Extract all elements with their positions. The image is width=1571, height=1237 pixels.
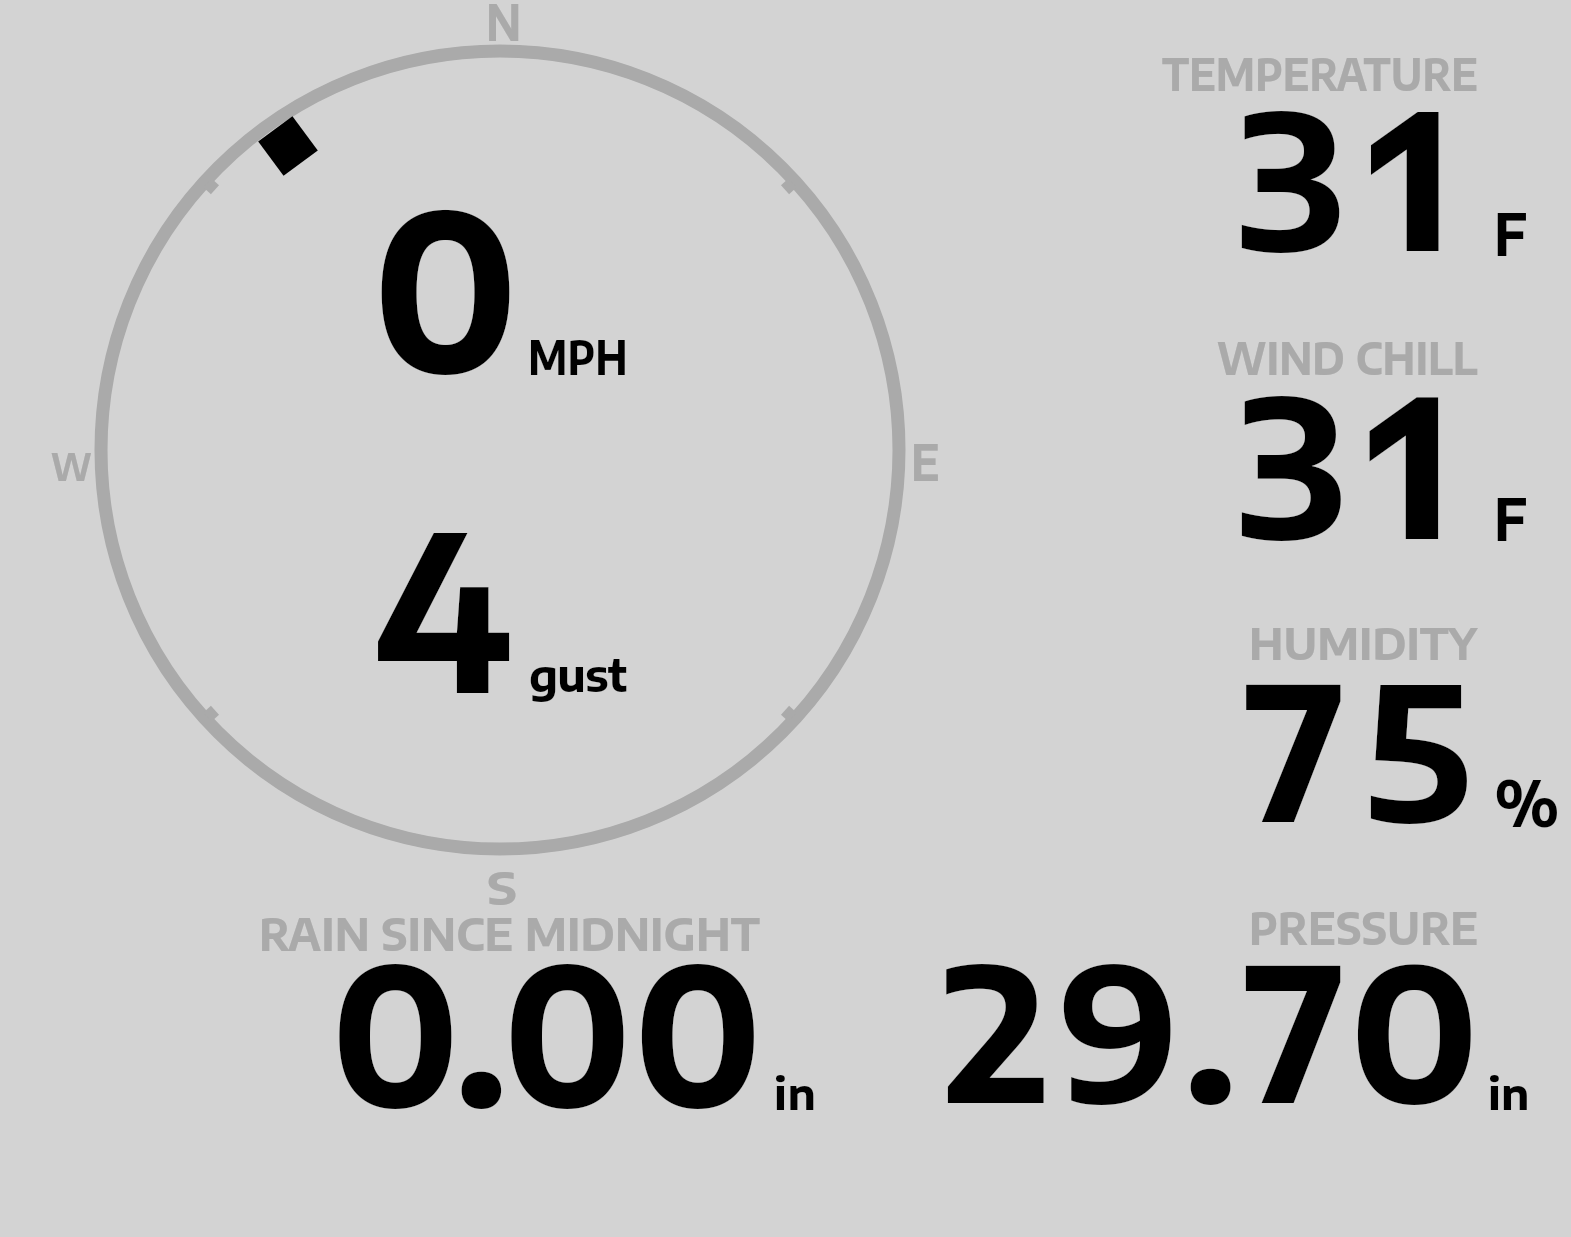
staticText: F [1494,197,1528,268]
staticText: PRESSURE [1249,899,1478,955]
button[interactable]: Wind direction compass, 0 miles per hour… [96,45,904,853]
staticText: % [1494,762,1560,841]
button[interactable]: Humidity 75 percent [1130,610,1570,840]
staticText: in [774,1065,817,1119]
staticText: E [911,429,940,492]
staticText: S [487,859,518,915]
staticText: 0 [371,149,520,421]
staticText: WIND CHILL [1217,329,1478,385]
staticText: 0.00 [330,912,764,1149]
staticText: gust [529,647,627,702]
button[interactable]: Pressure 29.70 inches [900,900,1550,1125]
staticText: F [1494,482,1528,553]
staticText: HUMIDITY [1249,615,1478,669]
staticText: TEMPERATURE [1162,45,1479,101]
staticText: 31 [1237,58,1477,292]
staticText: W [51,442,92,489]
staticText: MPH [528,328,628,386]
staticText: 31 [1237,343,1473,581]
staticText: 29.70 [943,913,1490,1144]
button[interactable]: Temperature 31 degrees Fahrenheit [1130,40,1570,270]
button[interactable]: Wind chill 31 degrees Fahrenheit [1130,325,1570,555]
button[interactable]: Rain since midnight 0.00 inches [240,900,840,1125]
staticText: RAIN SINCE MIDNIGHT [259,905,761,961]
staticText: N [486,0,522,52]
staticText: in [1488,1065,1530,1119]
staticText: 75 [1245,632,1495,863]
staticText: 4 [374,471,513,740]
